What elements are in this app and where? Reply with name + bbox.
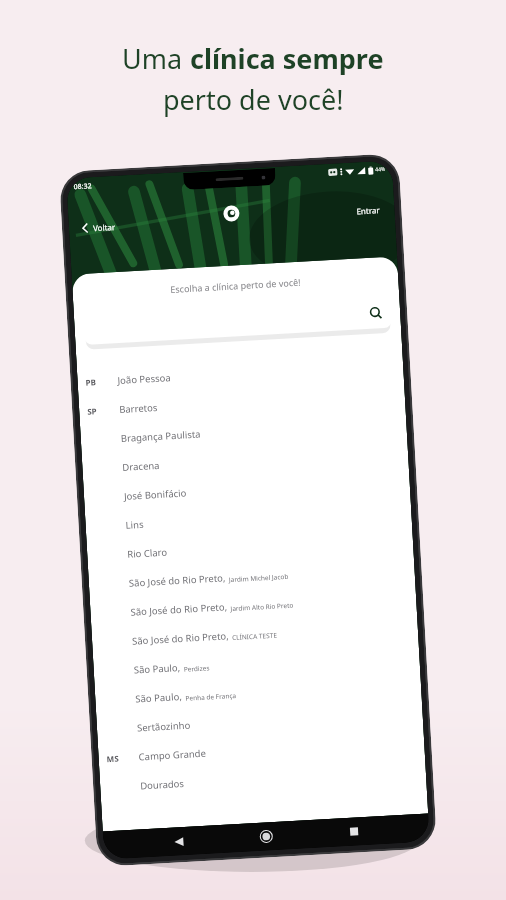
staticText: São José do Rio Preto, <box>130 600 228 619</box>
staticText: Rio Claro <box>127 546 168 561</box>
staticText: Jardim Alto Rio Preto <box>230 601 294 613</box>
button[interactable]: Voltar <box>165 828 192 855</box>
button[interactable]: Dracena <box>82 437 409 484</box>
button[interactable]: Rio Claro <box>86 524 414 571</box>
button[interactable]: Lins <box>85 495 412 542</box>
button[interactable]: Recentes <box>340 818 368 845</box>
button[interactable]: Bragança Paulista <box>80 408 407 455</box>
button[interactable]: Dourados <box>99 755 427 803</box>
staticText: José Bonifácio <box>124 486 187 503</box>
other: Buscar <box>369 306 383 320</box>
staticText: CLÍNICA TESTE <box>232 631 277 642</box>
button[interactable]: São José do Rio Preto, <box>90 582 417 629</box>
staticText: Lins <box>125 518 144 532</box>
staticText: Entrar <box>356 204 381 216</box>
button[interactable]: SP <box>78 379 405 426</box>
button[interactable]: São José do Rio Preto, <box>88 553 415 600</box>
staticText: Dourados <box>140 777 185 792</box>
staticText: 08:32 <box>73 181 92 192</box>
staticText: Penha de França <box>185 691 237 703</box>
staticText: Uma <box>122 40 190 77</box>
button[interactable]: MS <box>98 726 425 774</box>
button[interactable]: São Paulo, <box>93 640 420 687</box>
staticText: 44% <box>375 166 385 173</box>
staticText: SP <box>87 405 97 417</box>
button[interactable]: José Bonifácio <box>83 466 410 513</box>
staticText: Sertãozinho <box>137 718 191 734</box>
staticText: PB <box>85 376 97 388</box>
staticText: MS <box>106 753 119 764</box>
staticText: Bragança Paulista <box>120 427 201 445</box>
button[interactable]: Sertãozinho <box>96 698 423 745</box>
other: Logotipo <box>223 205 240 222</box>
staticText: Perdizes <box>183 663 210 674</box>
button[interactable]: Entrar <box>352 201 385 220</box>
staticText: Jardim Michel Jacob <box>229 572 289 584</box>
staticText: São José do Rio Preto, <box>128 571 226 590</box>
staticText: São José do Rio Preto, <box>132 629 229 648</box>
staticText: João Pessoa <box>117 371 172 387</box>
staticText: perto de você! <box>163 81 344 118</box>
staticText: Escolha a clínica perto de você! <box>72 270 399 300</box>
button[interactable]: Buscar <box>83 297 392 344</box>
staticText: clínica sempre <box>190 40 384 77</box>
staticText: Voltar <box>93 221 116 233</box>
staticText: São Paulo, <box>133 661 181 677</box>
staticText: Barretos <box>119 401 158 416</box>
button[interactable]: Voltar <box>77 218 120 237</box>
staticText: São Paulo, <box>135 690 183 706</box>
button[interactable]: São Paulo, <box>95 669 422 716</box>
staticText: Campo Grande <box>138 747 207 763</box>
button[interactable]: PB <box>77 350 404 397</box>
button[interactable]: São José do Rio Preto, <box>91 611 418 658</box>
button[interactable]: Início <box>252 823 280 850</box>
staticText: Dracena <box>122 459 161 474</box>
